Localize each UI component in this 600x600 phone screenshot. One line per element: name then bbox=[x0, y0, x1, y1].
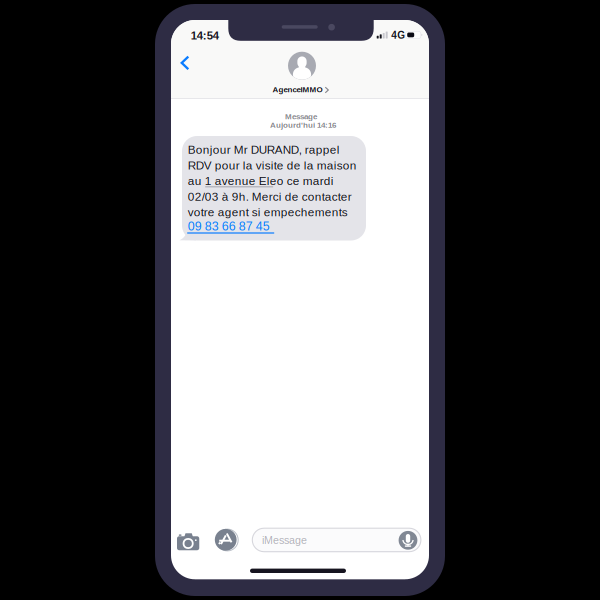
staticText: votre agent si empechements bbox=[188, 206, 348, 219]
staticText: 14:54 bbox=[191, 29, 219, 42]
staticText: 02/03 à 9h. Merci de contacter bbox=[188, 190, 352, 203]
staticText: AgenceIMMO bbox=[272, 85, 322, 94]
button[interactable]: Camera bbox=[177, 530, 199, 550]
staticText: Aujourd'hui 14:16 bbox=[270, 120, 336, 129]
staticText: Bonjour Mr DURAND, rappel bbox=[188, 143, 340, 156]
button[interactable]: AgenceIMMO bbox=[240, 50, 364, 94]
button[interactable]: Apps bbox=[215, 529, 237, 551]
staticText: iMessage bbox=[262, 534, 307, 546]
staticText: au 1 avenue Eleo ce mardi bbox=[188, 174, 334, 187]
button[interactable]: iMessage bbox=[252, 528, 421, 552]
staticText: 4G bbox=[391, 30, 405, 41]
button[interactable]: Back bbox=[171, 48, 199, 78]
button[interactable]: 09 83 66 87 45 bbox=[188, 220, 362, 236]
staticText: Message bbox=[285, 112, 317, 121]
staticText: RDV pour la visite de la maison bbox=[188, 159, 357, 172]
staticText: 09 83 66 87 45 bbox=[188, 219, 270, 233]
